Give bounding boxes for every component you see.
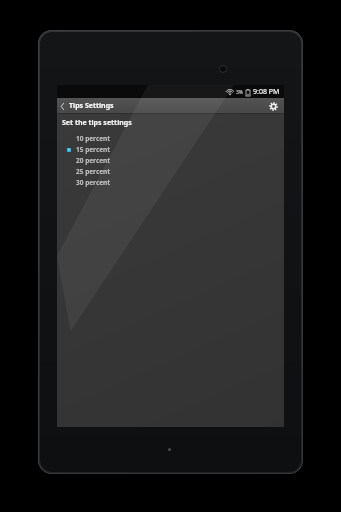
- staticText: 30 percent: [76, 178, 111, 187]
- button[interactable]: 25 percent: [57, 166, 284, 177]
- button[interactable]: 20 percent: [57, 155, 284, 166]
- staticText: 15 percent: [76, 145, 111, 154]
- staticText: 20 percent: [76, 156, 111, 165]
- staticText: 25 percent: [76, 167, 111, 176]
- staticText: Set the tips settings: [62, 118, 132, 128]
- staticText: 10 percent: [76, 134, 111, 143]
- button[interactable]: 30 percent: [57, 177, 284, 188]
- staticText: 3%: [236, 89, 244, 96]
- staticText: Tips Settings: [69, 101, 114, 111]
- button[interactable]: 10 percent: [57, 133, 284, 144]
- button[interactable]: Settings: [262, 98, 284, 114]
- button[interactable]: Tips Settings: [57, 98, 118, 114]
- button[interactable]: 15 percent: [57, 144, 284, 155]
- staticText: 9:08 PM: [253, 87, 280, 97]
